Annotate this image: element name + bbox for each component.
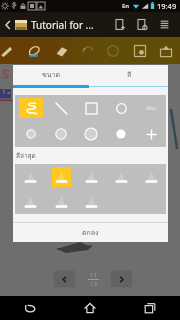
button[interactable]: Share [153,37,179,64]
button[interactable]: Recent colour [106,164,136,189]
button[interactable]: Recent colour [76,164,106,189]
button[interactable]: More options [153,12,175,37]
staticText: สีล่าสุด [16,151,36,161]
button[interactable]: Tool option [106,95,136,121]
button[interactable]: Next page [110,270,133,288]
button[interactable]: Tool option [136,95,166,121]
button[interactable]: Tool option [15,95,46,121]
button[interactable]: Redo [100,37,126,64]
button[interactable]: ตกลง [13,223,168,242]
button[interactable]: Recent colour [46,164,76,189]
staticText: ขนาด [42,69,61,80]
button[interactable]: Tool option [76,121,106,147]
button[interactable]: Recent colour [76,189,106,214]
staticText: 13 [90,280,97,288]
button[interactable]: Recents [120,296,180,320]
staticText: Tutorial for ... [31,18,94,32]
button[interactable]: Undo [75,37,101,64]
button[interactable]: Eraser [49,37,75,64]
button[interactable]: ขนาด [13,65,90,84]
staticText: 19:49 [157,1,177,11]
staticText: Abc [146,104,157,112]
button[interactable]: Pen [0,37,19,64]
button[interactable]: Select [127,37,153,64]
staticText: 11 [90,271,97,279]
button[interactable]: Navigate up [0,12,15,37]
button[interactable]: Highlighter [21,37,47,64]
staticText: ตกลง [82,227,99,238]
button[interactable]: Tool option [15,121,46,147]
button[interactable]: Discard [131,12,153,37]
button[interactable]: Tool option [76,95,106,121]
button[interactable]: Tool option [136,121,166,147]
button[interactable]: Tool option [106,121,136,147]
button[interactable]: Save as [109,12,131,37]
button[interactable]: Back [0,296,60,320]
button[interactable]: Home [60,296,120,320]
button[interactable]: Tool option [46,121,76,147]
button[interactable]: Tool option [46,95,76,121]
button[interactable]: Recent colour [15,164,46,189]
staticText: En [122,2,130,10]
button[interactable]: Recent colour [46,189,76,214]
button[interactable]: Recent colour [136,164,166,189]
button[interactable]: Recent colour [15,189,46,214]
button[interactable]: Previous page [53,270,76,288]
staticText: สี [127,69,132,80]
button[interactable]: สี [90,65,168,84]
